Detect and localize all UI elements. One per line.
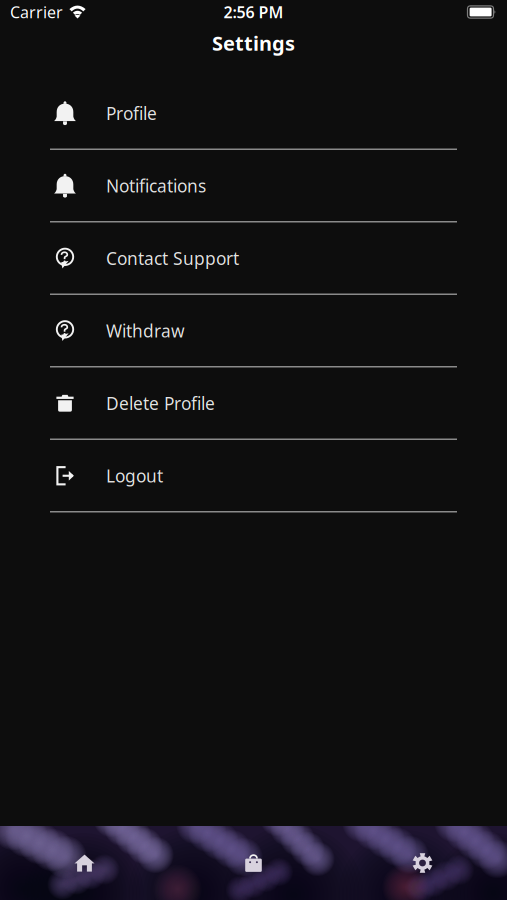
button[interactable]: Notifications xyxy=(0,157,507,230)
staticText: Logout xyxy=(106,464,163,487)
button[interactable]: Delete Profile xyxy=(0,375,507,447)
button[interactable]: Profile xyxy=(0,85,507,157)
button[interactable]: Withdraw xyxy=(0,302,507,375)
staticText: Settings xyxy=(212,30,295,56)
button[interactable]: Logout xyxy=(0,447,507,520)
staticText: 2:56 PM xyxy=(223,1,283,23)
staticText: Carrier xyxy=(10,1,63,23)
staticText: Contact Support xyxy=(106,247,239,270)
staticText: Withdraw xyxy=(106,319,185,342)
staticText: Profile xyxy=(106,102,157,125)
staticText: Notifications xyxy=(106,174,206,197)
button[interactable]: Contact Support xyxy=(0,230,507,302)
staticText: Delete Profile xyxy=(106,392,215,415)
button[interactable]: Home xyxy=(0,826,169,900)
button[interactable]: Settings xyxy=(338,826,507,900)
button[interactable]: Shop xyxy=(169,826,338,900)
